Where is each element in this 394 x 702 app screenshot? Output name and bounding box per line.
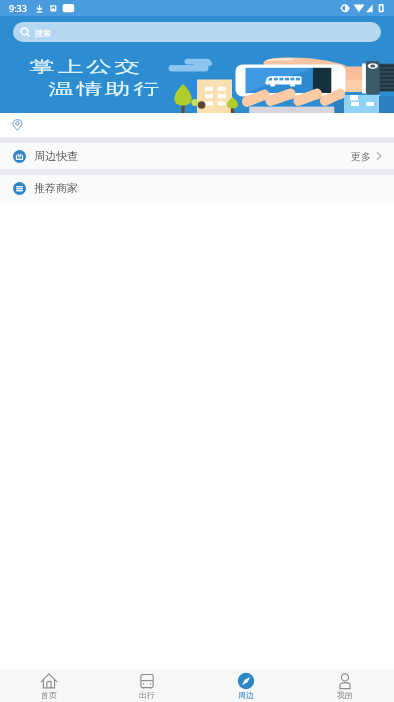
button[interactable]: 定位: [0, 113, 394, 137]
staticText: 更多: [351, 150, 371, 163]
staticText: 我的: [337, 690, 353, 700]
button[interactable]: 搜索: [13, 22, 381, 42]
staticText: 掌上公交: [28, 57, 141, 76]
button[interactable]: 出行: [98, 669, 196, 702]
staticText: 搜索: [35, 28, 51, 38]
staticText: 推荐商家: [34, 181, 78, 195]
button[interactable]: 周边快查: [0, 143, 394, 169]
staticText: 周边: [238, 690, 254, 700]
staticText: 9:33: [9, 2, 27, 14]
button[interactable]: 推荐商家: [0, 175, 394, 201]
staticText: 出行: [139, 690, 155, 700]
staticText: 周边快查: [34, 149, 78, 163]
button[interactable]: 首页: [0, 669, 98, 702]
button[interactable]: 我的: [295, 669, 394, 702]
staticText: 温情助行: [47, 79, 160, 98]
button[interactable]: 周边: [196, 669, 295, 702]
staticText: 首页: [41, 690, 57, 700]
